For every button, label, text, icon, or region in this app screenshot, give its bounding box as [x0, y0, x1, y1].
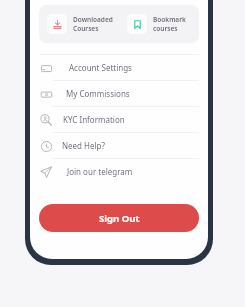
- staticText: My Commissions: [66, 88, 130, 99]
- button[interactable]: Join our telegram: [39, 159, 199, 184]
- button[interactable]: Downloaded courses: [39, 14, 119, 34]
- staticText: KYC Information: [63, 114, 125, 125]
- button[interactable]: Bookmark courses: [119, 14, 199, 34]
- button[interactable]: Account Settings: [39, 55, 199, 80]
- button[interactable]: Need Help: [39, 133, 199, 158]
- button[interactable]: KYC Information: [39, 107, 199, 132]
- staticText: Sign Out: [99, 212, 140, 225]
- other: Downloaded courses: [53, 20, 62, 29]
- staticText: Downloaded Courses: [73, 15, 113, 33]
- staticText: Bookmark courses: [153, 15, 186, 33]
- staticText: Account Settings: [69, 62, 132, 73]
- staticText: Need Help?: [62, 140, 105, 151]
- other: Bookmark courses: [133, 20, 142, 29]
- button[interactable]: My Commissions: [39, 81, 199, 106]
- staticText: Join our telegram: [67, 166, 133, 177]
- button[interactable]: Sign Out: [39, 204, 199, 232]
